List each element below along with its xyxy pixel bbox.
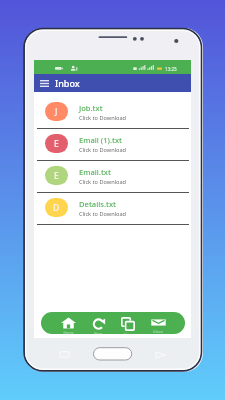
button[interactable]: Open navigation drawer (37, 76, 51, 90)
button[interactable]: J (34, 97, 191, 129)
staticText: Inbox (153, 329, 163, 334)
staticText: Click to Download (79, 114, 127, 122)
staticText: Email.txt (79, 167, 111, 177)
staticText: Details.txt (79, 199, 116, 209)
button[interactable]: E (34, 129, 191, 161)
staticText: Click to Download (79, 178, 127, 186)
button[interactable]: New (83, 312, 113, 334)
staticText: 13:25 (165, 66, 177, 72)
button[interactable]: E (34, 161, 191, 193)
button[interactable]: D (34, 193, 191, 225)
staticText: Copy (124, 332, 133, 334)
staticText: E (54, 138, 59, 150)
button[interactable]: Inbox (143, 312, 173, 334)
staticText: Inbox (55, 77, 80, 89)
staticText: D (53, 202, 60, 214)
staticText: Click to Download (79, 210, 127, 218)
staticText: Email (1).txt (79, 135, 122, 145)
staticText: Click to Download (79, 146, 127, 154)
button[interactable]: Home (53, 312, 83, 334)
staticText: J (55, 106, 58, 118)
staticText: E (54, 170, 59, 182)
staticText: New (94, 331, 102, 334)
staticText: Job.txt (79, 103, 103, 113)
staticText: Home (63, 330, 74, 334)
button[interactable]: Copy (113, 312, 143, 334)
